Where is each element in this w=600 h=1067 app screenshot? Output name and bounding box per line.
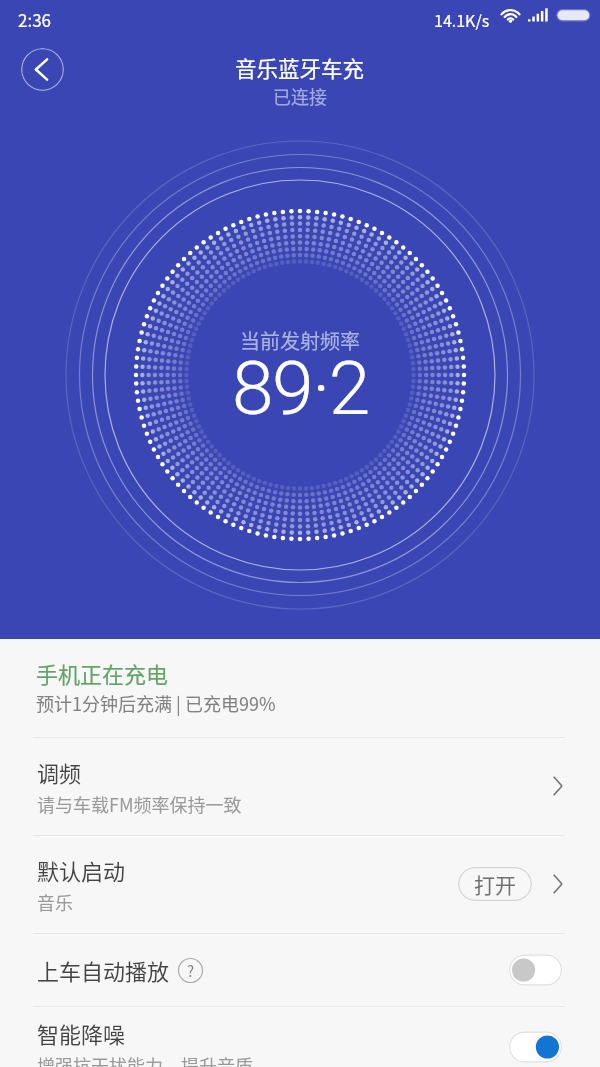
staticText: 默认启动 [37,854,126,886]
button[interactable]: 智能降噪 [0,1006,600,1067]
staticText: 音乐蓝牙车充 [235,52,365,82]
button[interactable]: Open [540,773,562,799]
button[interactable]: Open [540,871,562,897]
staticText: 2:36 [18,7,52,32]
staticText: 请与车载FM频率保持一致 [37,791,242,817]
staticText: 89·2 [232,344,369,432]
button[interactable]: 默认启动 [0,835,600,933]
staticText: 智能降噪 [37,1017,126,1049]
staticText: 当前发射频率 [240,326,360,355]
staticText: 预计1分钟后充满 | 已充电99% [36,690,276,716]
button[interactable]: 上车自动播放 [0,933,600,1006]
staticText: 上车自动播放 [37,954,170,986]
button[interactable]: Toggle off [509,954,562,986]
staticText: 增强抗干扰能力，提升音质 [37,1052,253,1067]
staticText: 手机正在充电 [36,657,169,689]
staticText: 音乐 [37,889,73,915]
staticText: 调频 [37,756,82,788]
button[interactable]: 打开 [458,867,532,901]
button[interactable]: Toggle on [509,1031,562,1063]
staticText: 已连接 [273,83,327,107]
button[interactable]: Back [21,48,64,91]
staticText: 打开 [474,869,516,899]
button[interactable]: 调频 [0,737,600,835]
staticText: ? [187,960,195,982]
staticText: 14.1K/s [434,8,490,31]
